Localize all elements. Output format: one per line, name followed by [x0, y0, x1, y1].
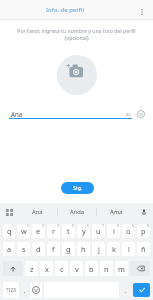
- button[interactable]: m: [115, 261, 128, 276]
- button[interactable]: s: [17, 242, 30, 256]
- staticText: d: [36, 244, 41, 254]
- staticText: p: [141, 226, 146, 236]
- staticText: u: [96, 226, 101, 236]
- staticText: Ana: [32, 208, 43, 216]
- button[interactable]: i: [107, 224, 120, 238]
- button[interactable]: p: [137, 224, 150, 238]
- staticText: 3: [42, 224, 44, 228]
- button[interactable]: Sig.: [61, 182, 94, 194]
- button[interactable]: c: [55, 261, 68, 276]
- staticText: i: [113, 226, 115, 236]
- staticText: c: [60, 264, 64, 274]
- button[interactable]: Enter: [133, 283, 150, 297]
- staticText: Por favor, ingresa tu nombre y una foto …: [6, 27, 147, 41]
- button[interactable]: b: [85, 261, 98, 276]
- staticText: a: [7, 244, 12, 254]
- staticText: w: [21, 226, 27, 236]
- button[interactable]: l: [122, 242, 135, 256]
- button[interactable]: [30, 282, 42, 298]
- button[interactable]: .: [121, 282, 131, 298]
- staticText: h: [81, 244, 86, 254]
- staticText: 2: [27, 224, 29, 228]
- staticText: b: [89, 264, 94, 274]
- button[interactable]: k: [107, 242, 120, 256]
- button[interactable]: ñ: [137, 242, 150, 256]
- staticText: 5: [72, 224, 74, 228]
- button[interactable]: Shift: [3, 261, 23, 276]
- staticText: k: [112, 244, 116, 254]
- button[interactable]: e: [32, 224, 45, 238]
- staticText: n: [104, 264, 109, 274]
- button[interactable]: ,: [21, 282, 28, 298]
- button[interactable]: t: [62, 224, 75, 238]
- staticText: 0: [147, 224, 149, 228]
- staticText: m: [118, 264, 125, 274]
- button[interactable]: v: [70, 261, 83, 276]
- button[interactable]: u: [92, 224, 105, 238]
- staticText: Ana: [11, 110, 23, 118]
- button[interactable]: y: [77, 224, 90, 238]
- staticText: Sig.: [73, 184, 83, 192]
- staticText: x: [45, 264, 49, 274]
- button[interactable]: Anda: [58, 203, 96, 221]
- button[interactable]: Backspace: [130, 261, 150, 276]
- button[interactable]: r: [47, 224, 60, 238]
- button[interactable]: x: [40, 261, 53, 276]
- other: Backspace: [136, 264, 145, 273]
- button[interactable]: Emoji: [133, 106, 149, 122]
- button[interactable]: More options: [135, 5, 149, 19]
- button[interactable]: d: [32, 242, 45, 256]
- staticText: ñ: [141, 244, 146, 254]
- button[interactable]: Add profile photo: [57, 55, 97, 95]
- staticText: f: [52, 244, 55, 254]
- staticText: 4: [57, 224, 59, 228]
- other: Shift: [10, 266, 16, 272]
- button[interactable]: j: [92, 242, 105, 256]
- staticText: Ama: [110, 208, 123, 216]
- staticText: l: [128, 244, 130, 254]
- button[interactable]: w: [17, 224, 30, 238]
- button[interactable]: a: [3, 242, 15, 256]
- staticText: 22: [126, 112, 131, 117]
- staticText: 8: [117, 224, 119, 228]
- staticText: y: [82, 226, 86, 236]
- button[interactable]: Toolbar: [0, 203, 18, 221]
- staticText: s: [22, 244, 26, 254]
- staticText: e: [36, 226, 41, 236]
- staticText: t: [67, 226, 70, 236]
- button[interactable]: n: [100, 261, 113, 276]
- staticText: z: [30, 264, 34, 274]
- staticText: 9: [132, 224, 134, 228]
- button[interactable]: z: [25, 261, 38, 276]
- staticText: 7: [102, 224, 104, 228]
- staticText: 1: [12, 224, 14, 228]
- button[interactable]: h: [77, 242, 90, 256]
- staticText: o: [126, 226, 131, 236]
- staticText: Info. de perfil: [46, 6, 84, 14]
- button[interactable]: f: [47, 242, 60, 256]
- staticText: q: [7, 226, 12, 236]
- staticText: r: [52, 226, 56, 236]
- staticText: .: [125, 287, 127, 294]
- button[interactable]: Ama: [97, 203, 135, 221]
- staticText: ,: [24, 287, 26, 294]
- staticText: j: [98, 244, 100, 254]
- button[interactable]: g: [62, 242, 75, 256]
- staticText: 6: [87, 224, 89, 228]
- button[interactable]: q: [3, 224, 15, 238]
- button[interactable]: ?123: [3, 282, 19, 298]
- staticText: g: [66, 244, 71, 254]
- staticText: v: [75, 264, 79, 274]
- staticText: ?123: [6, 287, 16, 293]
- button[interactable]: Ana: [18, 203, 57, 221]
- staticText: Anda: [70, 208, 85, 216]
- button[interactable]: o: [122, 224, 135, 238]
- button[interactable]: Voice input: [135, 203, 153, 221]
